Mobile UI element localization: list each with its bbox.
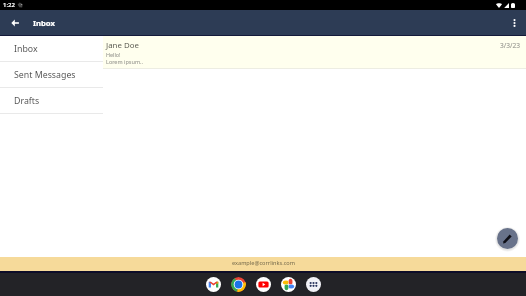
button[interactable]: example@corrlinks.com (0, 257, 526, 271)
staticText: Inbox (33, 18, 55, 28)
button[interactable]: Compose (497, 228, 518, 249)
staticText: Hello! (106, 51, 121, 58)
staticText: 1:22 (3, 1, 15, 9)
button[interactable]: Google Photos (281, 277, 296, 292)
staticText: 3/3/23 (500, 41, 520, 50)
staticText: Jane Doe (106, 40, 139, 51)
button[interactable]: Sent Messages (0, 62, 103, 88)
staticText: example@corrlinks.com (232, 259, 295, 267)
button[interactable]: YouTube (256, 277, 271, 292)
staticText: Drafts (14, 95, 40, 107)
button[interactable]: Gmail (206, 277, 221, 292)
button[interactable]: Drafts (0, 88, 103, 114)
staticText: Sent Messages (14, 69, 76, 81)
button[interactable]: Chrome (231, 277, 246, 292)
button[interactable]: Jane Doe (103, 36, 526, 69)
staticText: Lorem ipsum.. (106, 58, 143, 65)
staticText: Inbox (14, 43, 38, 55)
button[interactable]: Inbox (0, 36, 103, 62)
button[interactable]: More options (502, 10, 526, 35)
button[interactable]: Back (0, 10, 26, 35)
button[interactable]: All apps (306, 277, 321, 292)
